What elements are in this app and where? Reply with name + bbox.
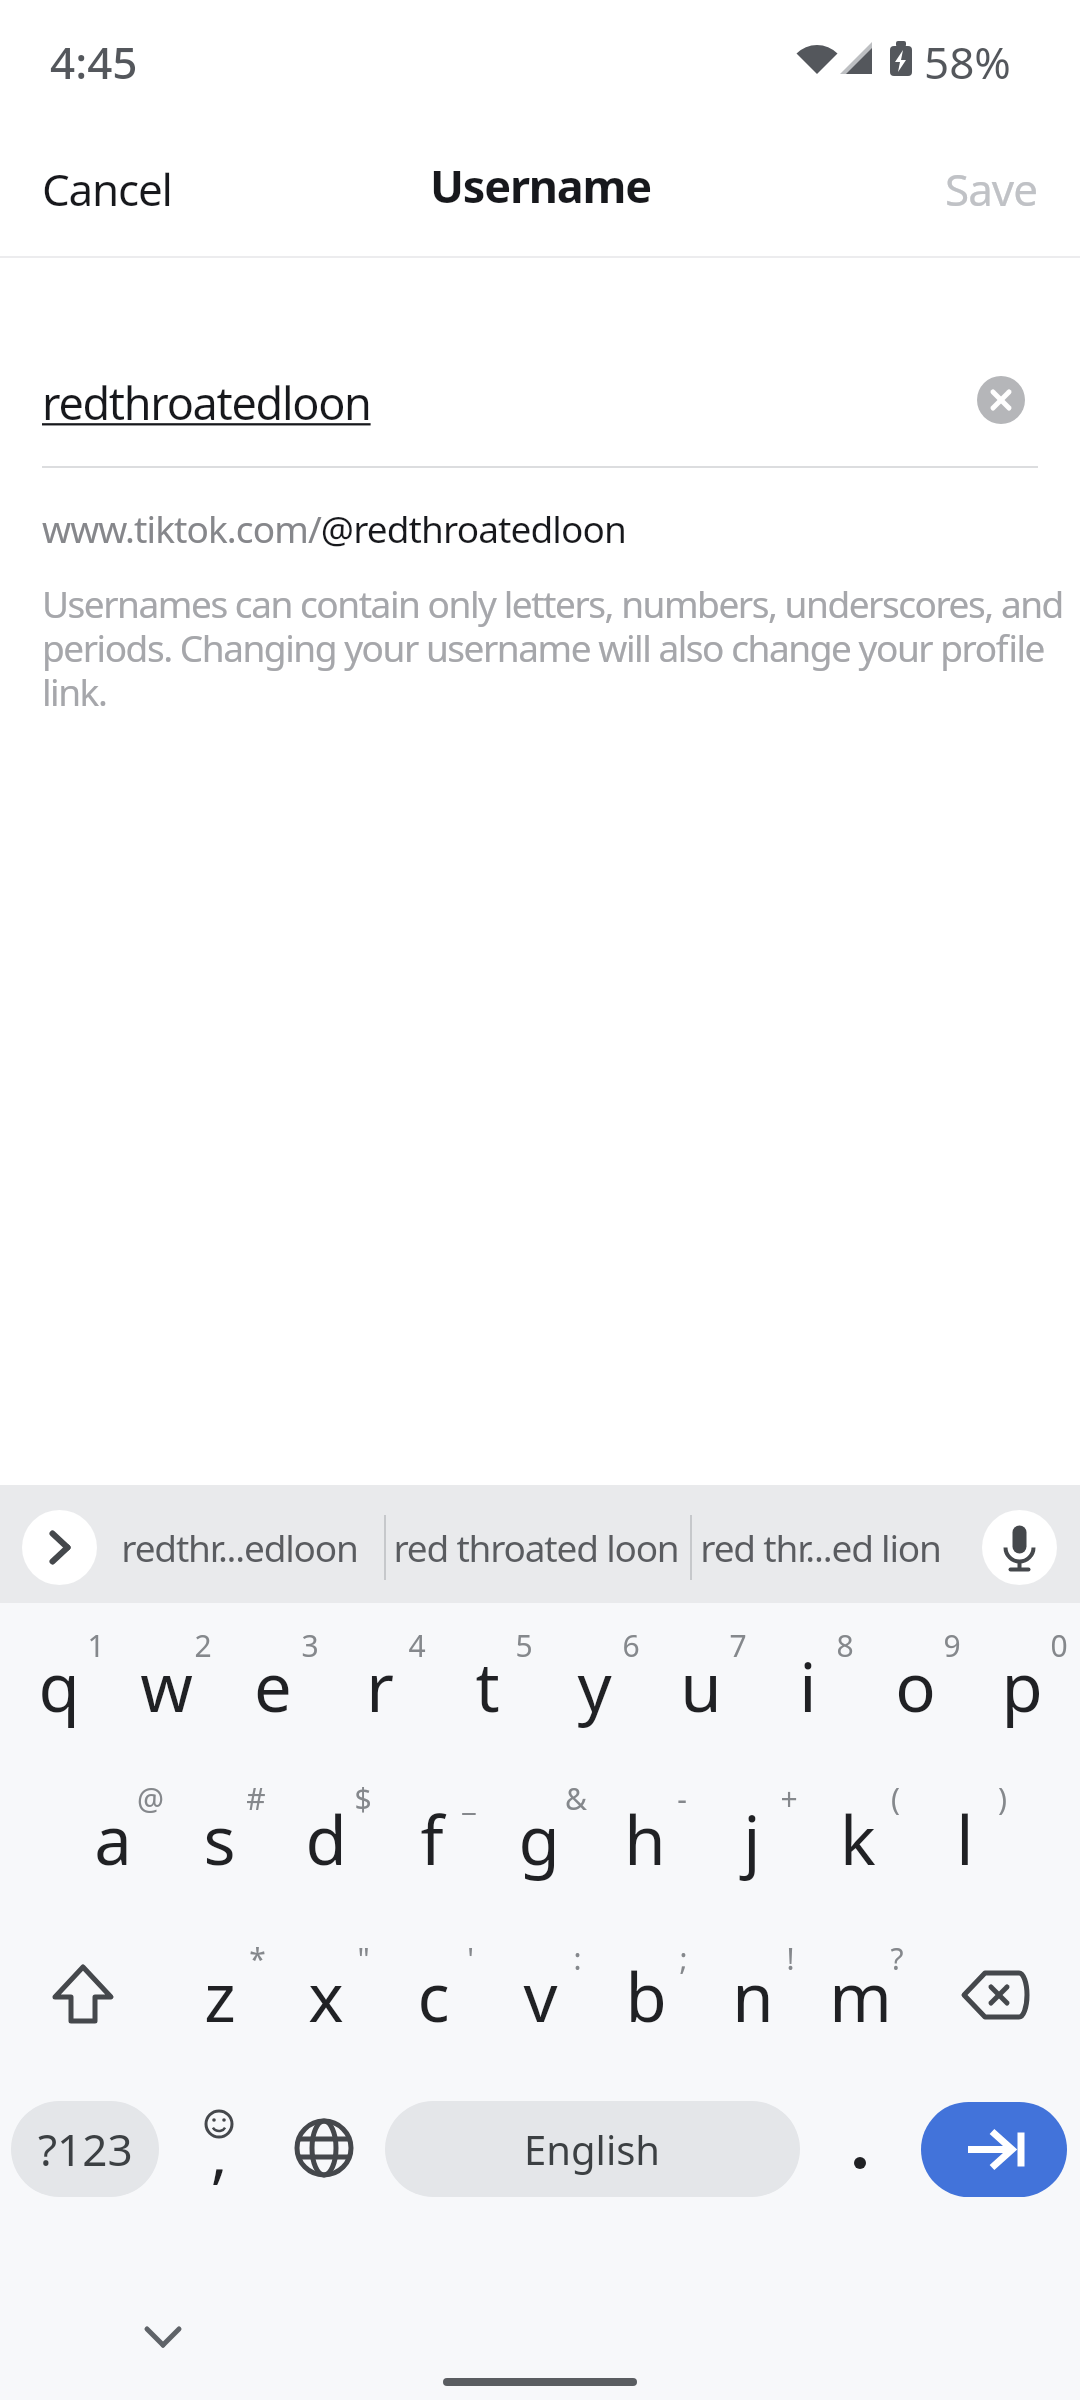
button[interactable]: s [165, 1778, 273, 1898]
staticText: red thr...ed lion [700, 1522, 941, 1572]
button[interactable]: i [754, 1625, 862, 1745]
staticText: l [956, 1793, 974, 1884]
staticText: Cancel [42, 159, 172, 219]
staticText: * [249, 1938, 266, 1978]
staticText: y [577, 1640, 612, 1731]
staticText: _ [462, 1778, 476, 1818]
staticText: z [204, 1950, 236, 2041]
staticText: ' [467, 1938, 474, 1978]
button[interactable]: u [647, 1625, 755, 1745]
staticText: # [246, 1778, 266, 1818]
staticText: v [523, 1950, 558, 2041]
button[interactable]: red thr...ed lion [680, 1507, 960, 1587]
button[interactable] [28, 1940, 138, 2050]
staticText: redthroatedloon [42, 372, 371, 433]
staticText: red throated loon [393, 1522, 679, 1572]
button[interactable]: r [326, 1625, 434, 1745]
staticText: ; [679, 1938, 688, 1978]
staticText: e [254, 1640, 292, 1731]
staticText: u [680, 1640, 722, 1731]
staticText: g [518, 1793, 560, 1884]
staticText: " [357, 1938, 370, 1978]
staticText: x [308, 1950, 344, 2041]
button[interactable]: g [485, 1778, 593, 1898]
staticText: 2 [194, 1625, 212, 1665]
staticText: j [743, 1793, 761, 1884]
staticText: 9 [943, 1625, 961, 1665]
button[interactable]: redthr...edloon [89, 1507, 389, 1587]
button[interactable]: t [433, 1625, 541, 1745]
button[interactable] [977, 376, 1025, 424]
staticText: n [732, 1950, 774, 2041]
button[interactable]: English [385, 2101, 800, 2197]
staticText: f [420, 1793, 444, 1884]
staticText: ! [786, 1938, 795, 1978]
button[interactable] [940, 1940, 1050, 2050]
staticText: m [829, 1950, 892, 2041]
staticText: i [799, 1640, 817, 1731]
staticText: 4 [408, 1625, 426, 1665]
button[interactable] [820, 2108, 900, 2188]
button[interactable]: red throated loon [386, 1507, 686, 1587]
button[interactable]: w [112, 1625, 220, 1745]
staticText: o [895, 1640, 936, 1731]
staticText: b [625, 1950, 667, 2041]
staticText: Username [430, 155, 651, 216]
staticText: ) [998, 1778, 1007, 1818]
button[interactable]: o [861, 1625, 969, 1745]
button[interactable]: v [486, 1935, 594, 2055]
button[interactable]: l [911, 1778, 1019, 1898]
button[interactable]: Save [900, 144, 1050, 234]
staticText: Save [945, 159, 1038, 219]
staticText: k [840, 1793, 876, 1884]
staticText: @ [137, 1778, 164, 1818]
button[interactable]: b [592, 1935, 700, 2055]
button[interactable]: y [540, 1625, 648, 1745]
button[interactable] [921, 2102, 1067, 2197]
staticText: q [38, 1640, 80, 1731]
staticText: h [624, 1793, 666, 1884]
staticText: 1 [87, 1625, 105, 1665]
button[interactable]: j [698, 1778, 806, 1898]
button[interactable]: ?123 [11, 2101, 159, 2197]
staticText: Usernames can contain only letters, numb… [42, 578, 1078, 738]
button[interactable] [982, 1510, 1057, 1585]
staticText: t [475, 1640, 500, 1731]
staticText: 3 [301, 1625, 319, 1665]
staticText: + [780, 1778, 798, 1818]
button[interactable]: h [591, 1778, 699, 1898]
staticText: p [1001, 1640, 1043, 1731]
button[interactable]: , [179, 2102, 259, 2202]
staticText: : [573, 1938, 582, 1978]
button[interactable]: Cancel [30, 144, 190, 234]
staticText: 8 [836, 1625, 854, 1665]
staticText: 58% [924, 32, 1011, 92]
staticText: $ [354, 1778, 372, 1818]
staticText: d [305, 1793, 347, 1884]
button[interactable]: q [5, 1625, 113, 1745]
button[interactable]: z [166, 1935, 274, 2055]
button[interactable]: a [59, 1778, 167, 1898]
button[interactable]: k [804, 1778, 912, 1898]
staticText: r [366, 1640, 394, 1731]
staticText: ?123 [38, 2119, 133, 2179]
button[interactable]: d [272, 1778, 380, 1898]
staticText: 4:45 [50, 32, 138, 92]
button[interactable] [284, 2108, 364, 2188]
staticText: 7 [729, 1625, 747, 1665]
button[interactable]: x [272, 1935, 380, 2055]
button[interactable]: m [806, 1935, 914, 2055]
staticText: s [203, 1793, 236, 1884]
staticText: 0 [1050, 1625, 1068, 1665]
staticText: , [210, 2109, 228, 2196]
staticText: a [94, 1793, 132, 1884]
button[interactable]: p [968, 1625, 1076, 1745]
button[interactable]: f [378, 1778, 486, 1898]
button[interactable]: e [219, 1625, 327, 1745]
staticText: 5 [515, 1625, 533, 1665]
button[interactable]: c [379, 1935, 487, 2055]
staticText: c [417, 1950, 450, 2041]
staticText: www.tiktok.com/@redthroatedloon [42, 503, 626, 553]
button[interactable]: n [699, 1935, 807, 2055]
button[interactable] [22, 1510, 97, 1585]
